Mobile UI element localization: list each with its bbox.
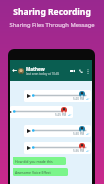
button[interactable]: 5:25 PM <box>10 106 73 118</box>
staticText: Sharing Recording <box>13 6 91 18</box>
staticText: How did you made this <box>15 159 53 164</box>
staticText: 5:30 PM <box>73 132 85 136</box>
staticText: Mathew <box>26 66 45 72</box>
button[interactable]: Call <box>77 67 84 74</box>
staticText: Sharing Files Through Message <box>9 21 95 29</box>
button[interactable]: Awesome Voice Effect <box>13 168 68 176</box>
button[interactable]: More options <box>85 68 91 74</box>
button[interactable]: 5:20 PM <box>24 90 91 102</box>
staticText: last seen today at 10:45 <box>26 72 60 76</box>
staticText: Awesome Voice Effect <box>15 170 51 175</box>
button[interactable]: Contact photo <box>18 68 24 74</box>
button[interactable]: Video call <box>69 67 76 74</box>
staticText: 5:20 PM <box>73 97 85 101</box>
button[interactable]: 5:30 PM <box>24 125 91 137</box>
staticText: 5:25 PM <box>55 113 67 117</box>
button[interactable]: 5:36 PM <box>24 142 91 154</box>
button[interactable]: How did you made this <box>13 157 66 165</box>
button[interactable]: Back <box>11 67 18 74</box>
staticText: 5:36 PM <box>73 149 85 153</box>
